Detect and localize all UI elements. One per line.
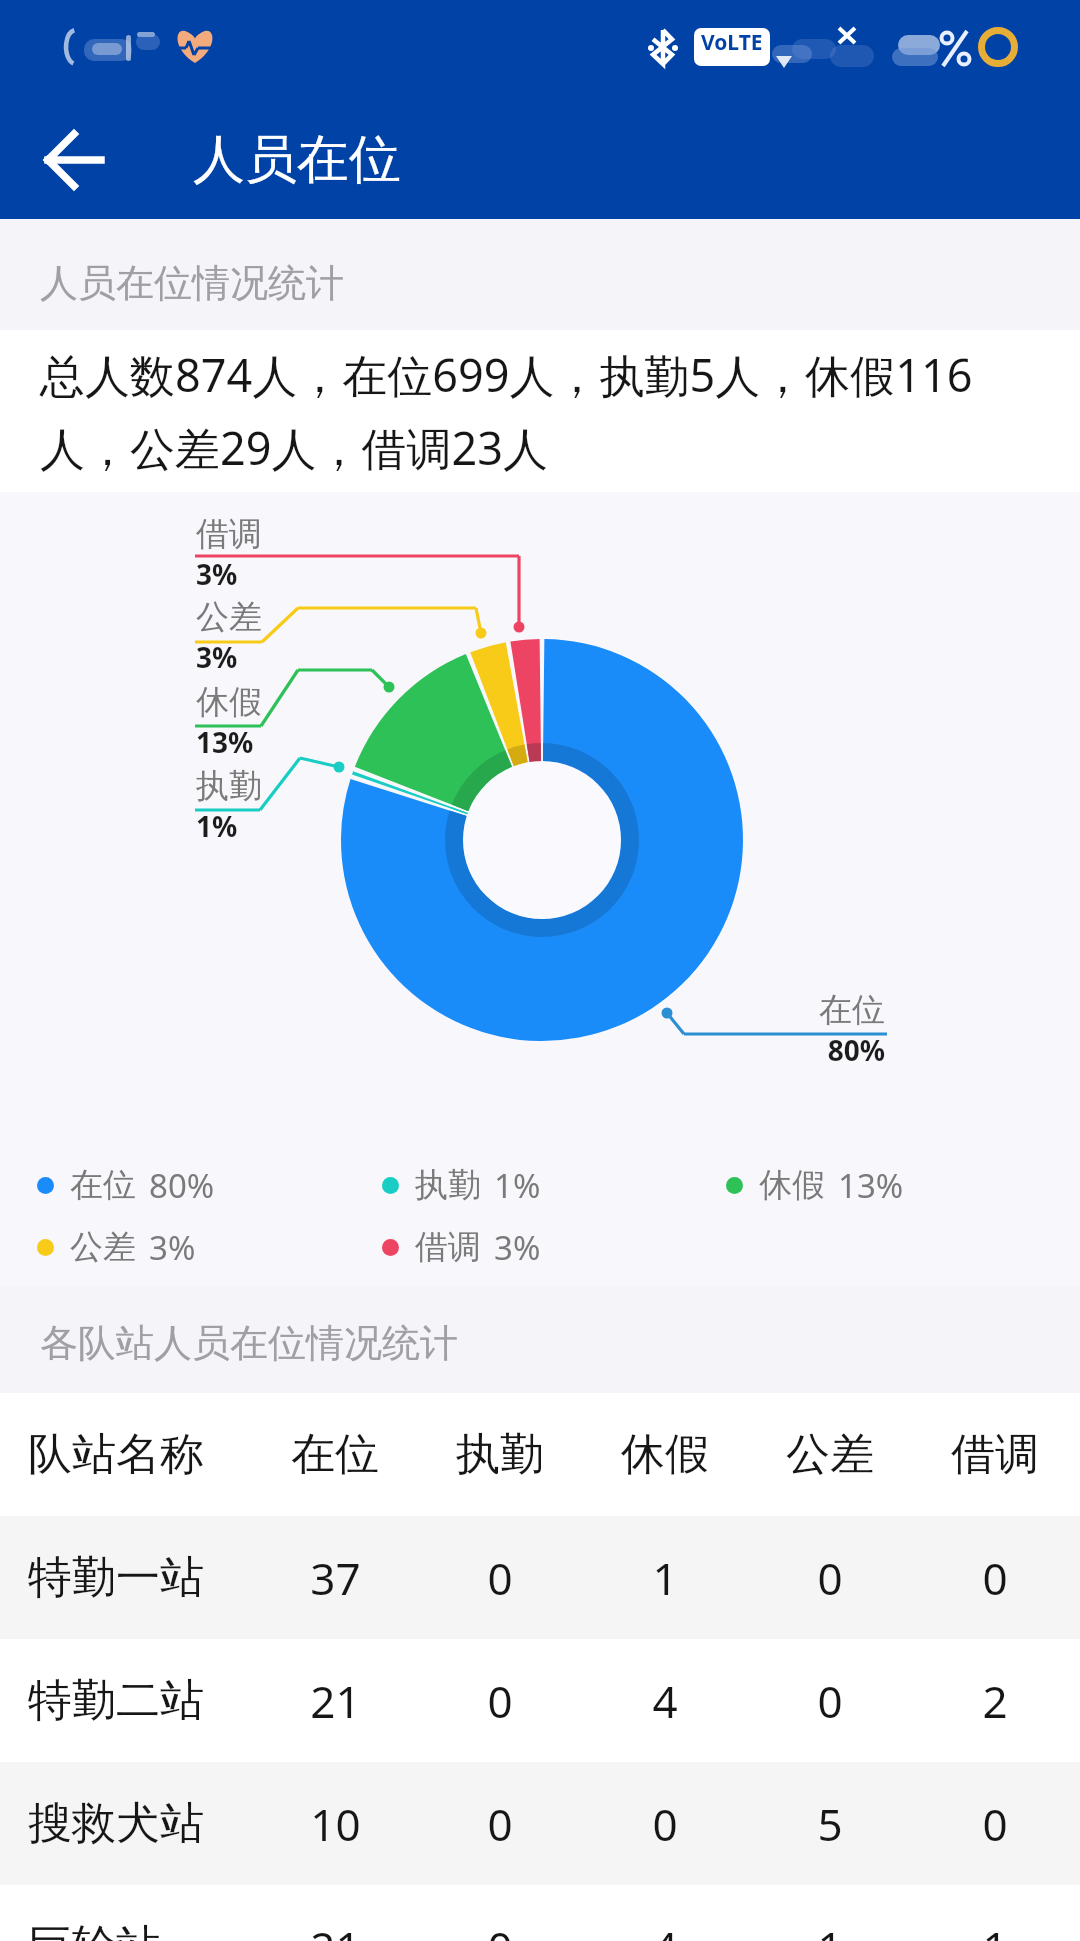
staticText: 队站名称 xyxy=(28,1427,204,1482)
button[interactable]: 执勤 xyxy=(382,1154,541,1216)
staticText: 在位 xyxy=(291,1427,379,1482)
staticText: 3% xyxy=(494,1225,541,1270)
button[interactable]: 借调 xyxy=(382,1216,541,1278)
staticText: 1 xyxy=(982,1917,1008,1941)
staticText: 0 xyxy=(982,1548,1008,1608)
staticText: 公差 xyxy=(786,1427,874,1482)
staticText: 休假 xyxy=(759,1164,825,1206)
staticText: 公差 xyxy=(70,1226,136,1268)
staticText: 3% xyxy=(196,638,238,676)
staticText: 人员在位 xyxy=(193,127,401,193)
staticText: 0 xyxy=(487,1794,513,1854)
button[interactable]: 公差 xyxy=(37,1216,196,1278)
button[interactable]: 巨轮站 xyxy=(0,1885,1080,1941)
staticText: 37 xyxy=(310,1548,361,1608)
staticText: 13% xyxy=(196,723,254,761)
staticText: 0 xyxy=(817,1671,843,1731)
staticText: 在位 xyxy=(70,1164,136,1206)
button[interactable]: 在位 xyxy=(37,1154,215,1216)
staticText: 休假 xyxy=(621,1427,709,1482)
staticText: 借调 xyxy=(951,1427,1039,1482)
staticText: 0 xyxy=(652,1794,678,1854)
staticText: 借调 xyxy=(415,1226,481,1268)
staticText: 2 xyxy=(982,1671,1008,1731)
staticText: 借调 xyxy=(196,513,262,555)
staticText: 1 xyxy=(652,1548,678,1608)
staticText: VoLTE xyxy=(701,28,763,57)
button[interactable]: 队站名称 xyxy=(0,1393,1080,1516)
staticText: 21 xyxy=(310,1917,361,1941)
staticText: 13% xyxy=(838,1163,904,1208)
button[interactable]: 搜救犬站 xyxy=(0,1762,1080,1885)
staticText: 执勤 xyxy=(196,765,262,807)
staticText: 搜救犬站 xyxy=(28,1796,204,1851)
staticText: 0 xyxy=(487,1548,513,1608)
staticText: 1% xyxy=(196,807,238,845)
staticText: 80% xyxy=(149,1163,215,1208)
staticText: 公差 xyxy=(196,596,262,638)
staticText: 1 xyxy=(817,1917,843,1941)
staticText: 80% xyxy=(827,1031,885,1069)
staticText: 0 xyxy=(487,1917,513,1941)
staticText: 在位 xyxy=(819,989,885,1031)
staticText: 特勤二站 xyxy=(28,1673,204,1728)
staticText: 5 xyxy=(817,1794,843,1854)
staticText: 10 xyxy=(310,1794,361,1854)
staticText: 人员在位情况统计 xyxy=(40,259,344,307)
staticText: 0 xyxy=(982,1794,1008,1854)
staticText: 执勤 xyxy=(456,1427,544,1482)
button[interactable]: Back xyxy=(14,100,134,219)
staticText: 21 xyxy=(310,1671,361,1731)
staticText: 4 xyxy=(652,1917,678,1941)
staticText: 4 xyxy=(652,1671,678,1731)
staticText: 0 xyxy=(817,1548,843,1608)
staticText: 特勤一站 xyxy=(28,1550,204,1605)
staticText: 各队站人员在位情况统计 xyxy=(40,1319,458,1367)
staticText: 3% xyxy=(196,555,238,593)
button[interactable]: 特勤二站 xyxy=(0,1639,1080,1762)
staticText: 执勤 xyxy=(415,1164,481,1206)
staticText: 休假 xyxy=(196,681,262,723)
staticText: 巨轮站 xyxy=(28,1919,160,1941)
button[interactable]: 休假 xyxy=(726,1154,904,1216)
staticText: 3% xyxy=(149,1225,196,1270)
staticText: 0 xyxy=(487,1671,513,1731)
staticText: 总人数874人，在位699人，执勤5人，休假116人，公差29人，借调23人 xyxy=(40,344,1005,478)
staticText: 1% xyxy=(494,1163,541,1208)
button[interactable]: 特勤一站 xyxy=(0,1516,1080,1639)
